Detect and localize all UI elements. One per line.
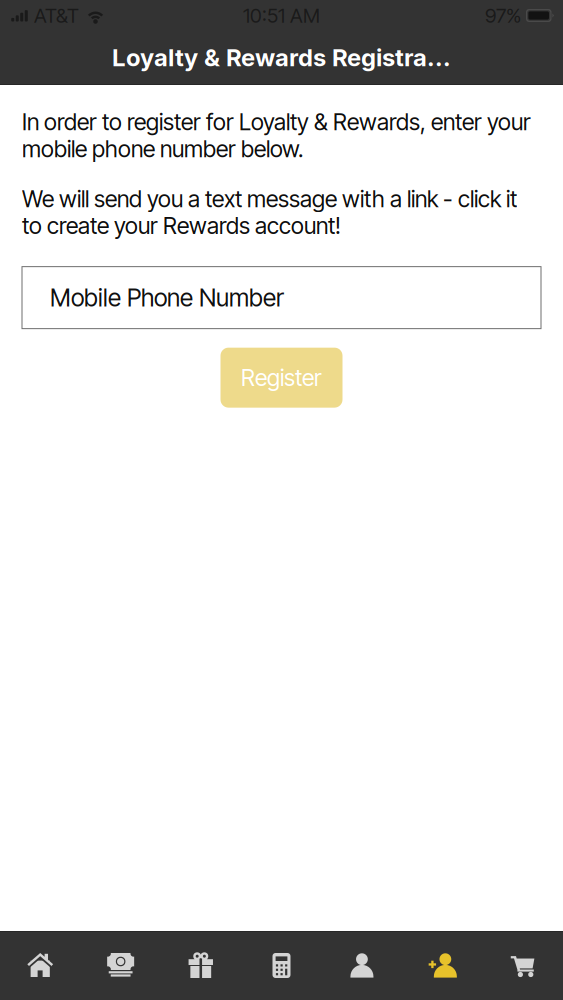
button[interactable]: Cash Back [80,931,161,1000]
staticText: Loyalty & Rewards Registra... [112,43,451,72]
staticText: We will send you a text message with a l… [22,185,517,240]
button[interactable]: Mobile Phone Number [22,267,541,329]
staticText: 10:51 AM [243,3,320,28]
button[interactable]: Register [220,348,342,408]
staticText: 97% [485,3,521,28]
button[interactable]: Cart [483,931,563,1000]
button[interactable]: Calculator [241,931,322,1000]
button[interactable]: Rewards [161,931,241,1000]
button[interactable]: Register [402,931,482,1000]
staticText: AT&T [34,3,79,28]
button[interactable]: Account [322,931,402,1000]
button[interactable]: Home [0,931,80,1000]
staticText: Mobile Phone Number [50,283,284,312]
staticText: Register [241,364,322,392]
staticText: In order to register for Loyalty & Rewar… [22,108,531,163]
